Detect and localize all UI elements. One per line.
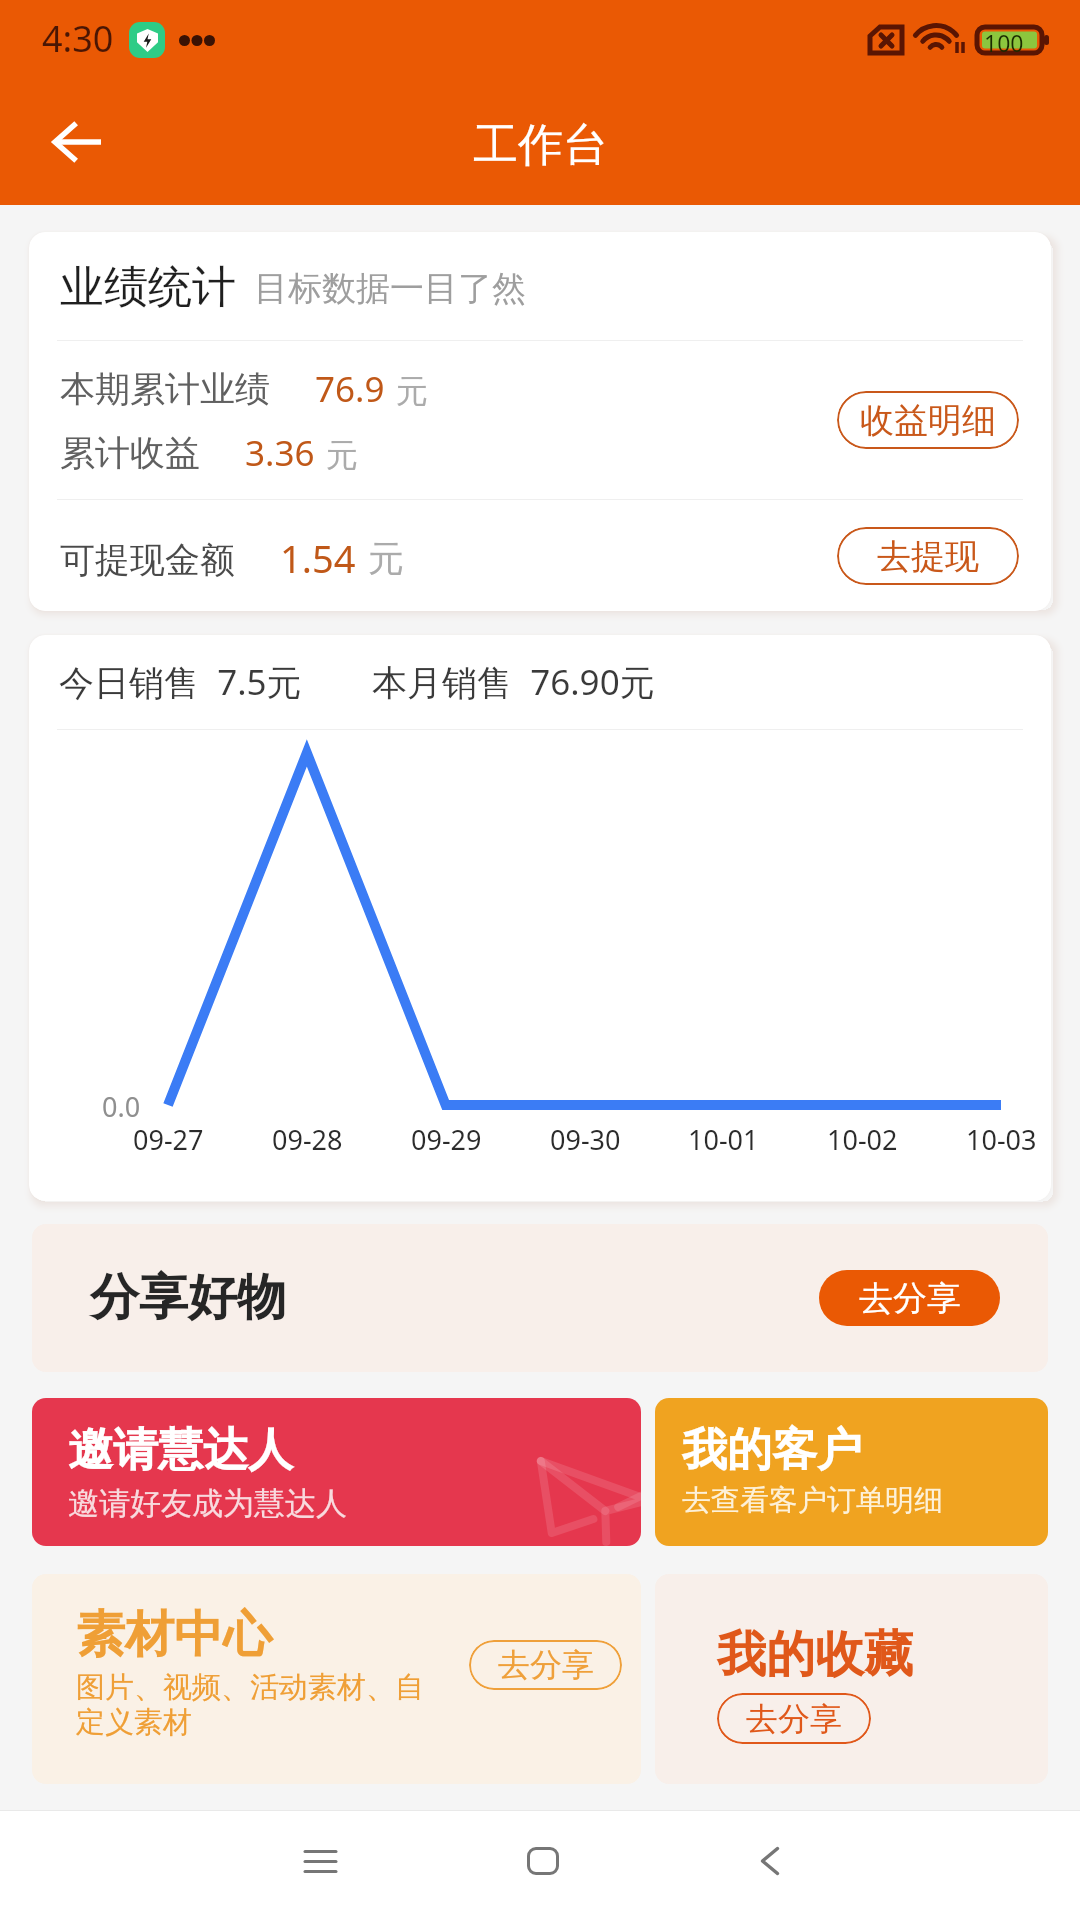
button[interactable]: 分享好物 xyxy=(32,1224,1048,1372)
button[interactable]: 去分享 xyxy=(717,1693,871,1744)
staticText: 邀请好友成为慧达人 xyxy=(68,1484,347,1523)
button[interactable]: 邀请慧达人 xyxy=(32,1398,641,1546)
button[interactable]: 我的收藏 xyxy=(655,1574,1048,1784)
staticText: 邀请慧达人 xyxy=(68,1422,293,1479)
button[interactable]: 去分享 xyxy=(469,1640,622,1690)
staticText: 去查看客户订单明细 xyxy=(682,1482,943,1519)
staticText: 图片、视频、活动素材、自定义素材 xyxy=(76,1669,424,1741)
staticText: 去分享 xyxy=(859,1277,961,1320)
staticText: 今日销售 7.5元 xyxy=(59,658,302,706)
staticText: 09-30 xyxy=(550,1121,621,1158)
staticText: 10-02 xyxy=(827,1121,898,1158)
button[interactable]: Recent apps xyxy=(260,1821,380,1901)
button[interactable]: 去分享 xyxy=(819,1270,1000,1326)
staticText: 可提现金额 xyxy=(60,538,235,582)
button[interactable]: 收益明细 xyxy=(837,391,1019,449)
button[interactable]: Home xyxy=(483,1821,603,1901)
staticText: 元 xyxy=(326,435,358,475)
staticText: 去分享 xyxy=(498,1645,594,1685)
button[interactable]: 去提现 xyxy=(837,527,1019,585)
staticText: 本期累计业绩 xyxy=(60,367,270,411)
button[interactable]: Back xyxy=(33,97,123,187)
staticText: 本月销售 76.90元 xyxy=(372,658,655,706)
staticText: 09-28 xyxy=(272,1121,343,1158)
staticText: 去分享 xyxy=(746,1699,842,1739)
staticText: 素材中心 xyxy=(76,1604,272,1666)
staticText: 10-01 xyxy=(688,1121,759,1158)
staticText: 目标数据一目了然 xyxy=(254,267,526,310)
staticText: 09-27 xyxy=(133,1121,204,1158)
staticText: 分享好物 xyxy=(90,1267,286,1329)
staticText: 工作台 xyxy=(473,117,608,174)
staticText: 元 xyxy=(368,536,404,581)
staticText: 累计收益 xyxy=(60,431,200,475)
button[interactable]: Back xyxy=(710,1821,830,1901)
staticText: 1.54 xyxy=(280,532,356,584)
staticText: 收益明细 xyxy=(860,399,996,442)
staticText: 09-29 xyxy=(411,1121,482,1158)
button[interactable]: 素材中心 xyxy=(32,1574,641,1784)
staticText: 0.0 xyxy=(102,1088,141,1125)
staticText: 我的客户 xyxy=(682,1422,862,1479)
staticText: 3.36 xyxy=(245,429,315,477)
button[interactable]: 我的客户 xyxy=(655,1398,1048,1546)
staticText: 元 xyxy=(396,371,428,411)
staticText: 76.9 xyxy=(315,365,385,413)
staticText: 10-03 xyxy=(966,1121,1037,1158)
staticText: 去提现 xyxy=(877,535,979,578)
staticText: 4:30 xyxy=(42,14,114,63)
staticText: 我的收藏 xyxy=(717,1624,913,1686)
staticText: 100 xyxy=(984,27,1024,58)
staticText: 业绩统计 xyxy=(60,260,236,315)
